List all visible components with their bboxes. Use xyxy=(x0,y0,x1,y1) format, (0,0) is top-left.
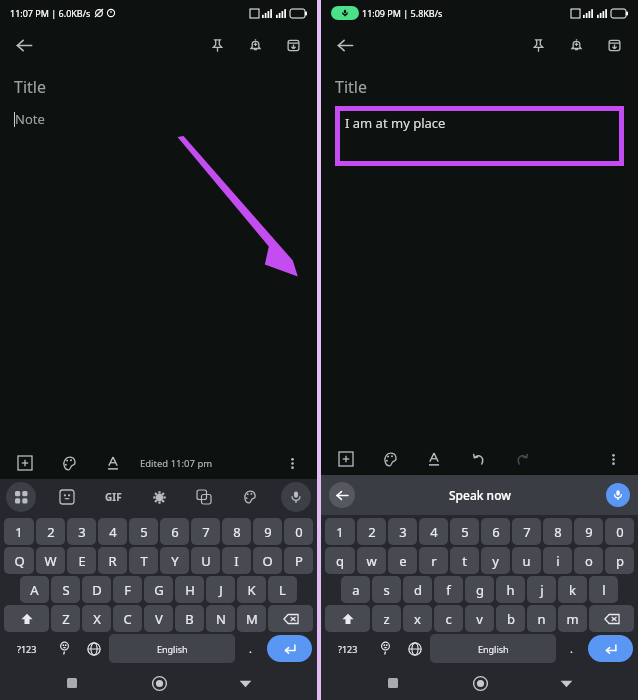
button[interactable]: 5 xyxy=(129,518,158,545)
button[interactable]: Symbols xyxy=(325,634,370,663)
button[interactable]: Backspace xyxy=(589,605,634,632)
button[interactable]: t xyxy=(450,547,479,574)
button[interactable]: More options xyxy=(600,446,626,472)
button[interactable]: Q xyxy=(4,547,34,574)
button[interactable]: x xyxy=(403,605,432,632)
button[interactable]: Format xyxy=(421,446,447,472)
button[interactable]: Emoji xyxy=(372,634,399,663)
button[interactable]: Enter xyxy=(588,635,633,662)
button[interactable]: Enter xyxy=(267,635,312,662)
button[interactable]: 0 xyxy=(284,518,313,545)
button[interactable]: 6 xyxy=(481,518,510,545)
button[interactable]: v xyxy=(465,605,494,632)
button[interactable]: O xyxy=(253,547,282,574)
button[interactable]: w xyxy=(357,547,386,574)
button[interactable]: Back xyxy=(329,29,361,61)
button[interactable] xyxy=(325,605,370,632)
button[interactable]: R xyxy=(98,547,127,574)
button[interactable]: Pin xyxy=(522,29,554,61)
button[interactable]: 4 xyxy=(419,518,448,545)
button[interactable]: j xyxy=(527,576,556,603)
button[interactable]: Language xyxy=(401,634,428,663)
button[interactable]: 1 xyxy=(4,518,34,545)
button[interactable]: 1 xyxy=(325,518,355,545)
button[interactable]: Redo xyxy=(509,446,535,472)
button[interactable]: n xyxy=(527,605,556,632)
button[interactable]: Backspace xyxy=(268,605,313,632)
button[interactable]: Format xyxy=(100,450,126,476)
button[interactable]: B xyxy=(175,605,204,632)
button[interactable]: T xyxy=(129,547,158,574)
button[interactable]: 2 xyxy=(357,518,386,545)
button[interactable]: 5 xyxy=(450,518,479,545)
button[interactable]: P xyxy=(284,547,313,574)
button[interactable] xyxy=(4,605,49,632)
button[interactable]: G xyxy=(144,576,173,603)
button[interactable]: L xyxy=(268,576,297,603)
button[interactable]: k xyxy=(558,576,587,603)
button[interactable]: J xyxy=(206,576,235,603)
button[interactable]: Archive xyxy=(598,29,630,61)
button[interactable]: Home xyxy=(144,668,174,698)
button[interactable]: b xyxy=(496,605,525,632)
button[interactable]: Add xyxy=(12,450,38,476)
button[interactable]: l xyxy=(589,576,618,603)
button[interactable]: Add xyxy=(333,446,359,472)
button[interactable]: 4 xyxy=(98,518,127,545)
button[interactable]: Y xyxy=(160,547,189,574)
button[interactable]: U xyxy=(191,547,220,574)
button[interactable]: Stickers xyxy=(52,482,82,512)
button[interactable]: i xyxy=(543,547,572,574)
button[interactable]: 7 xyxy=(191,518,220,545)
button[interactable]: 0 xyxy=(605,518,634,545)
button[interactable]: Reminder xyxy=(239,29,271,61)
button[interactable]: N xyxy=(206,605,235,632)
button[interactable]: y xyxy=(481,547,510,574)
button[interactable]: Recents xyxy=(378,668,408,698)
button[interactable]: D xyxy=(82,576,111,603)
button[interactable]: A xyxy=(20,576,49,603)
button[interactable]: 3 xyxy=(388,518,417,545)
button[interactable]: GIF xyxy=(98,482,128,512)
button[interactable]: Recents xyxy=(57,668,87,698)
button[interactable]: f xyxy=(434,576,463,603)
button[interactable]: z xyxy=(372,605,401,632)
button[interactable]: Back xyxy=(8,29,40,61)
button[interactable]: Voice input xyxy=(281,482,311,512)
button[interactable]: Translate xyxy=(189,482,219,512)
button[interactable]: m xyxy=(558,605,587,632)
button[interactable]: 2 xyxy=(36,518,65,545)
button[interactable]: Theme xyxy=(235,482,265,512)
button[interactable]: c xyxy=(434,605,463,632)
button[interactable]: English xyxy=(430,634,556,663)
button[interactable]: e xyxy=(388,547,417,574)
button[interactable]: H xyxy=(175,576,204,603)
button[interactable]: English xyxy=(109,634,235,663)
button[interactable]: Back xyxy=(329,482,355,508)
button[interactable]: Period xyxy=(558,634,585,663)
button[interactable]: Pin xyxy=(201,29,233,61)
button[interactable]: M xyxy=(237,605,266,632)
button[interactable]: Emoji xyxy=(51,634,78,663)
button[interactable]: g xyxy=(465,576,494,603)
button[interactable]: 6 xyxy=(160,518,189,545)
button[interactable]: o xyxy=(574,547,603,574)
button[interactable]: Archive xyxy=(277,29,309,61)
button[interactable]: Palette xyxy=(56,450,82,476)
button[interactable]: q xyxy=(325,547,355,574)
button[interactable]: Period xyxy=(237,634,264,663)
button[interactable]: I xyxy=(222,547,251,574)
button[interactable]: Home xyxy=(465,668,495,698)
button[interactable]: d xyxy=(403,576,432,603)
button[interactable]: X xyxy=(82,605,111,632)
button[interactable]: h xyxy=(496,576,525,603)
button[interactable]: K xyxy=(237,576,266,603)
button[interactable]: V xyxy=(144,605,173,632)
button[interactable]: F xyxy=(113,576,142,603)
button[interactable]: r xyxy=(419,547,448,574)
button[interactable]: Palette xyxy=(377,446,403,472)
button[interactable]: Apps xyxy=(6,482,36,512)
button[interactable]: W xyxy=(36,547,65,574)
button[interactable]: More options xyxy=(279,450,305,476)
button[interactable]: Reminder xyxy=(560,29,592,61)
